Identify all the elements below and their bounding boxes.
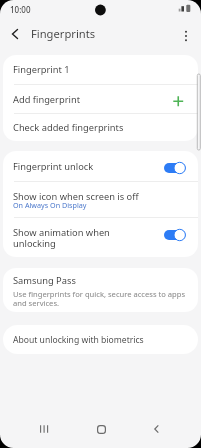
button[interactable]: Show icon when screen is off — [3, 182, 198, 217]
staticText: Fingerprint 1 — [13, 63, 70, 76]
button[interactable]: Fingerprint unlock — [3, 151, 198, 181]
staticText: About unlocking with biometrics — [13, 334, 144, 346]
button[interactable] — [6, 25, 24, 43]
button[interactable]: Samsung Pass — [3, 268, 198, 312]
button[interactable] — [26, 411, 62, 447]
button[interactable]: Show animation when unlocking — [3, 218, 198, 257]
button[interactable]: Fingerprint 1 — [3, 55, 198, 84]
button[interactable]: Check added fingerprints — [3, 114, 198, 141]
staticText: Use fingerprints for quick, secure acces… — [13, 289, 188, 308]
staticText: 10:00 — [10, 4, 31, 15]
button[interactable] — [83, 411, 119, 447]
staticText: Samsung Pass — [13, 274, 76, 287]
button[interactable] — [140, 411, 176, 447]
staticText: Check added fingerprints — [13, 121, 124, 134]
button[interactable]: About unlocking with biometrics — [3, 325, 198, 354]
staticText: Show icon when screen is off — [13, 190, 139, 203]
staticText: Fingerprint unlock — [13, 160, 94, 173]
button[interactable] — [179, 27, 193, 41]
staticText: Show animation when unlocking — [13, 226, 110, 250]
staticText: On Always On Display — [13, 200, 87, 210]
button[interactable]: Add fingerprint — [3, 85, 198, 113]
staticText: Fingerprints — [31, 26, 96, 41]
staticText: Add fingerprint — [13, 93, 80, 106]
